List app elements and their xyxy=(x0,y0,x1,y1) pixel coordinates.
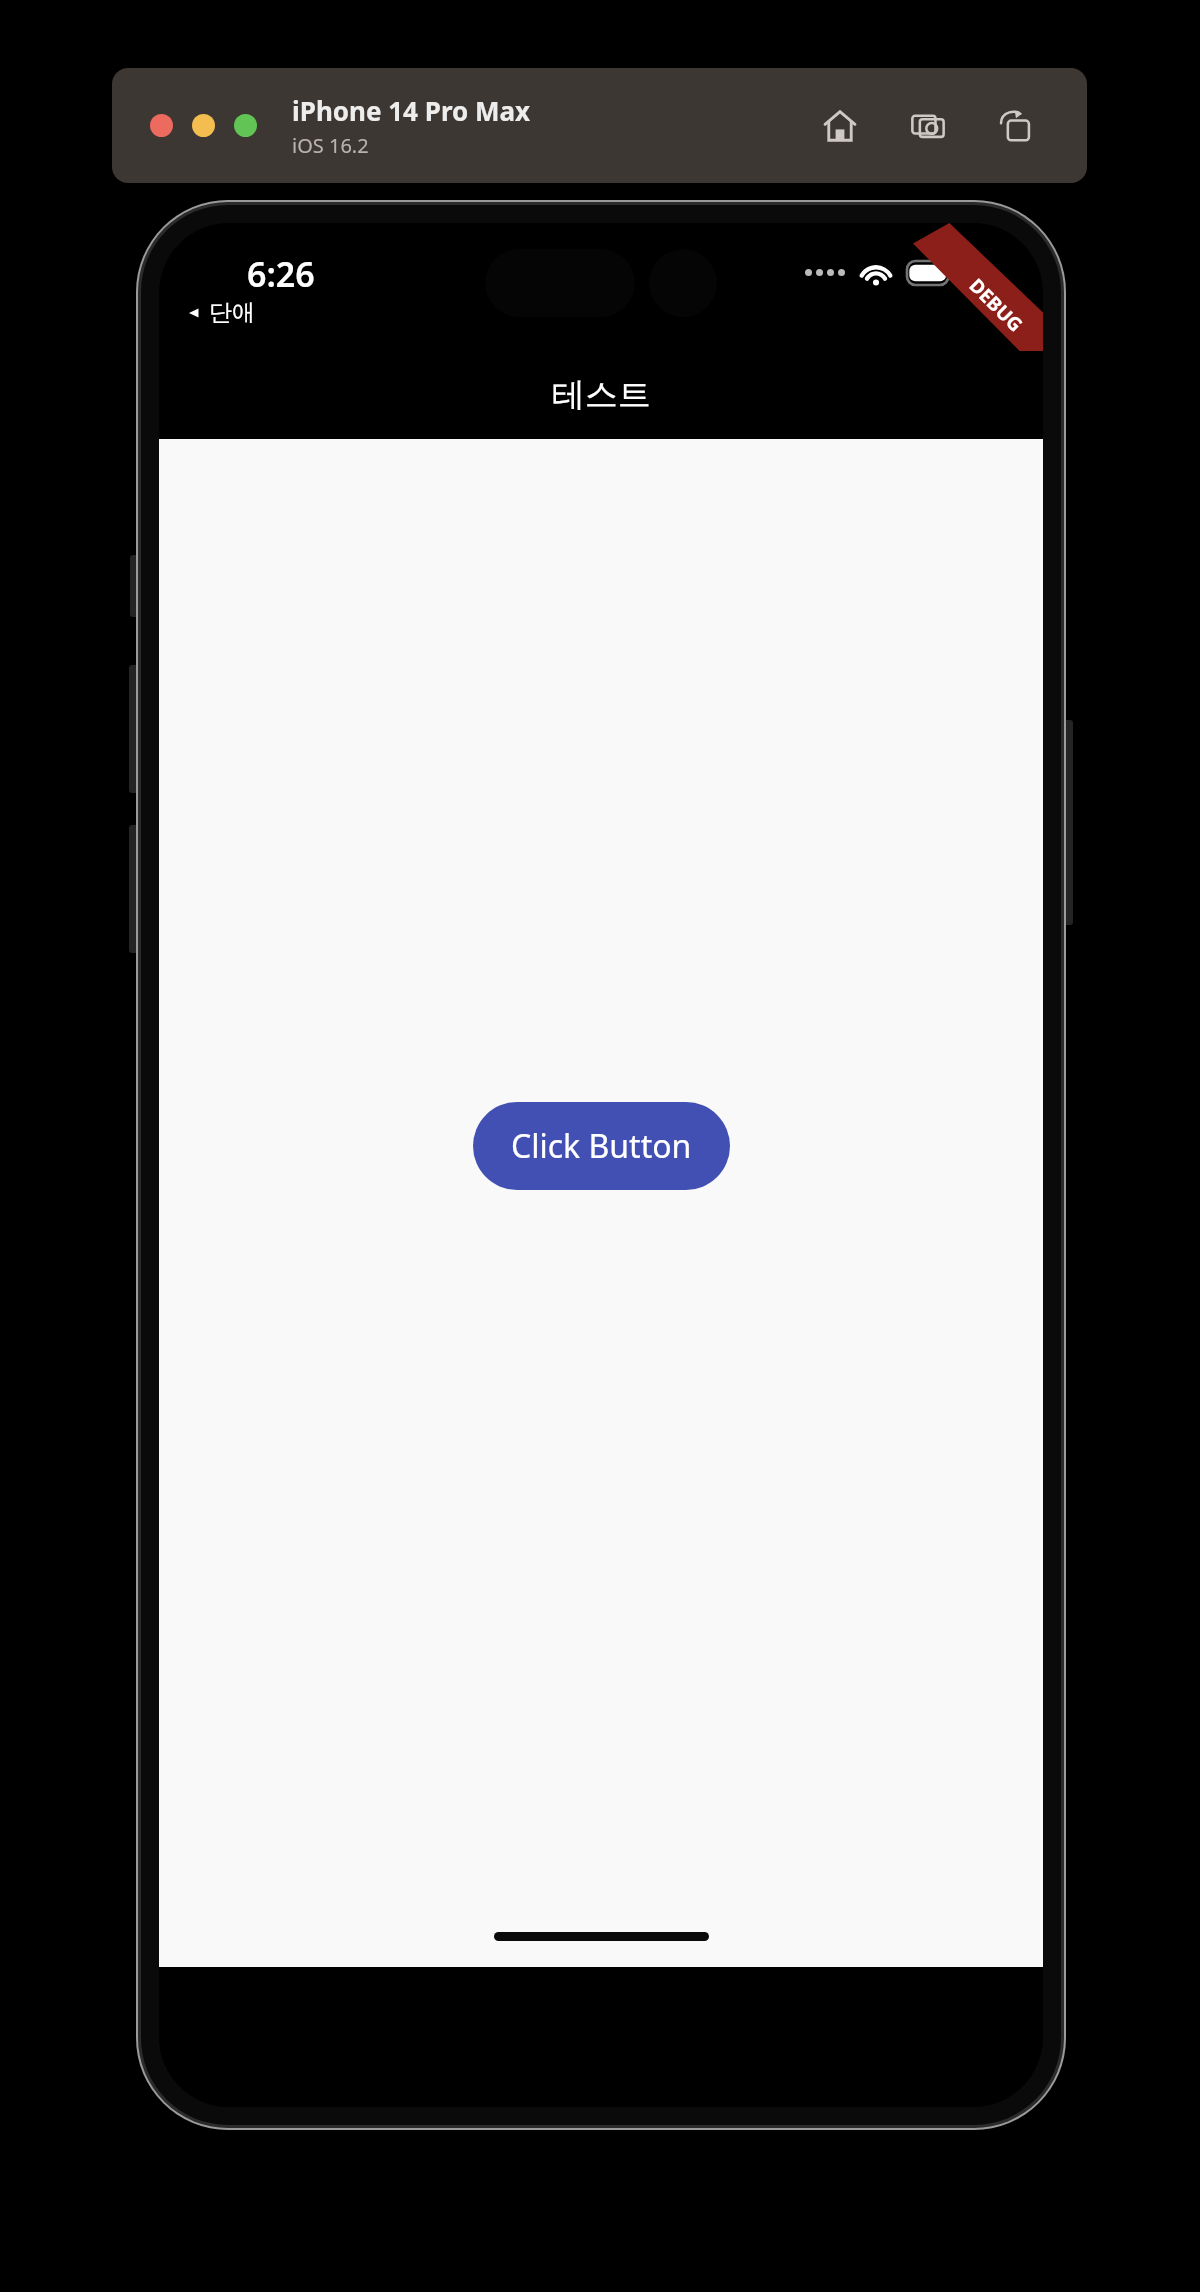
button[interactable]: Home xyxy=(817,103,863,149)
staticText: 단애 xyxy=(209,298,255,327)
button[interactable]: Maximize xyxy=(234,114,257,137)
staticText: DEBUG xyxy=(963,272,1029,338)
staticText: iPhone 14 Pro Max xyxy=(292,93,531,128)
button[interactable]: Screenshot xyxy=(905,103,951,149)
button[interactable]: Minimize xyxy=(192,114,215,137)
staticText: Click Button xyxy=(511,1124,692,1168)
button[interactable]: Click Button xyxy=(473,1102,730,1190)
staticText: iOS 16.2 xyxy=(292,132,369,159)
staticText: 6:26 xyxy=(247,251,315,297)
button[interactable]: Close xyxy=(150,114,173,137)
staticText: 테스트 xyxy=(552,374,651,416)
button[interactable]: Rotate xyxy=(993,103,1039,149)
